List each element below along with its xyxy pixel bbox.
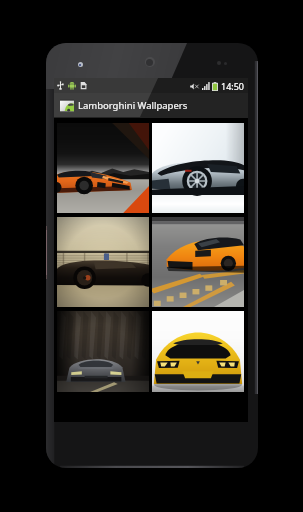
button[interactable]: Yellow Huracan wallpaper <box>152 311 244 392</box>
button[interactable]: Grey Reventon wallpaper <box>57 311 149 392</box>
staticText: 14:50 <box>221 80 245 92</box>
button[interactable]: Lamborghini Wallpapers <box>54 93 248 118</box>
button[interactable]: Black Aventador wallpaper <box>57 217 149 307</box>
button[interactable]: Orange Aventador wallpaper <box>57 123 149 213</box>
button[interactable]: Silver Murcielago wallpaper <box>152 123 244 213</box>
other: Front camera <box>78 62 83 67</box>
staticText: Lamborghini Wallpapers <box>78 99 188 112</box>
button[interactable]: Orange Murcielago wallpaper <box>152 217 244 307</box>
